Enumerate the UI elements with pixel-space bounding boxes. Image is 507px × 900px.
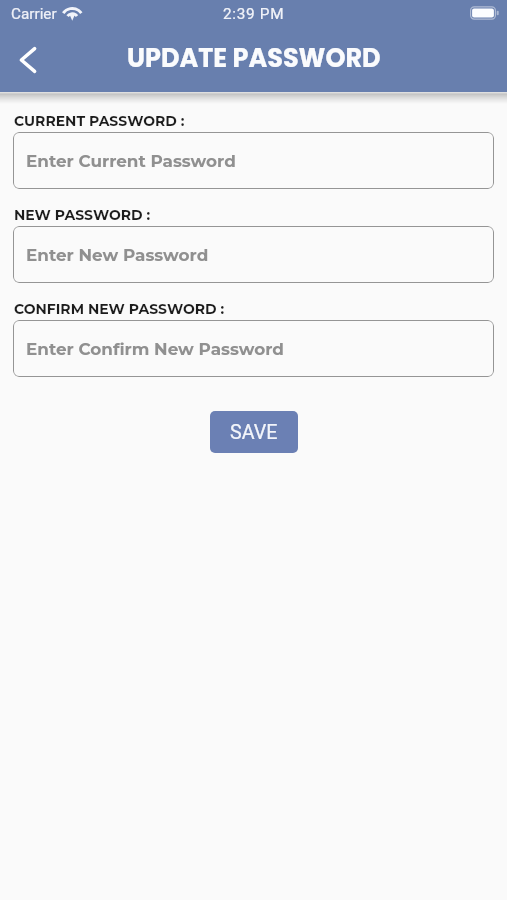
- staticText: Enter Confirm New Password: [26, 339, 284, 359]
- staticText: Enter Current Password: [26, 151, 236, 171]
- staticText: NEW PASSWORD :: [14, 206, 151, 223]
- staticText: UPDATE PASSWORD: [127, 40, 381, 76]
- button[interactable]: Enter New Password: [13, 226, 494, 283]
- staticText: Carrier: [11, 5, 57, 23]
- staticText: CURRENT PASSWORD :: [14, 112, 185, 129]
- staticText: SAVE: [230, 421, 278, 444]
- staticText: 2:39 PM: [223, 5, 285, 23]
- button[interactable]: Enter Current Password: [13, 132, 494, 189]
- staticText: Enter New Password: [26, 245, 209, 265]
- button[interactable]: Back: [6, 38, 50, 82]
- staticText: CONFIRM NEW PASSWORD :: [14, 300, 225, 317]
- button[interactable]: SAVE: [210, 411, 298, 453]
- button[interactable]: Enter Confirm New Password: [13, 320, 494, 377]
